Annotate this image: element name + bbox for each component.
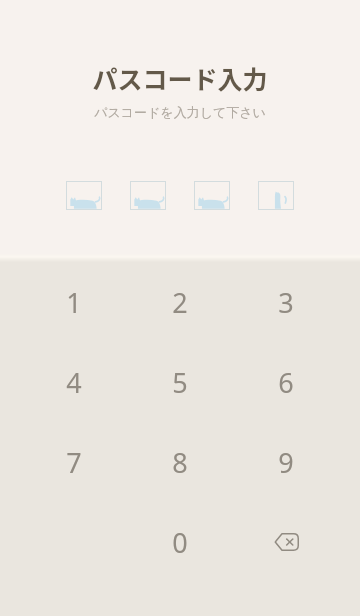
staticText: パスコードを入力して下さい (94, 104, 266, 120)
button[interactable]: 8 (127, 422, 233, 502)
staticText: 7 (66, 444, 82, 481)
staticText: 3 (278, 284, 294, 321)
button[interactable]: Delete (233, 502, 339, 582)
button[interactable]: 2 (127, 262, 233, 342)
staticText: 4 (66, 364, 82, 401)
staticText: 2 (172, 284, 188, 321)
staticText: 1 (66, 284, 82, 321)
staticText: パスコード入力 (92, 60, 268, 96)
button[interactable]: 5 (127, 342, 233, 422)
staticText: 9 (278, 444, 294, 481)
button[interactable]: 4 (21, 342, 127, 422)
staticText: 8 (172, 444, 188, 481)
staticText: 6 (278, 364, 294, 401)
staticText: 5 (172, 364, 188, 401)
staticText: 0 (172, 524, 188, 561)
button[interactable]: 0 (127, 502, 233, 582)
button[interactable]: 1 (21, 262, 127, 342)
button[interactable]: 9 (233, 422, 339, 502)
button[interactable]: 6 (233, 342, 339, 422)
button[interactable]: 7 (21, 422, 127, 502)
button[interactable]: 3 (233, 262, 339, 342)
